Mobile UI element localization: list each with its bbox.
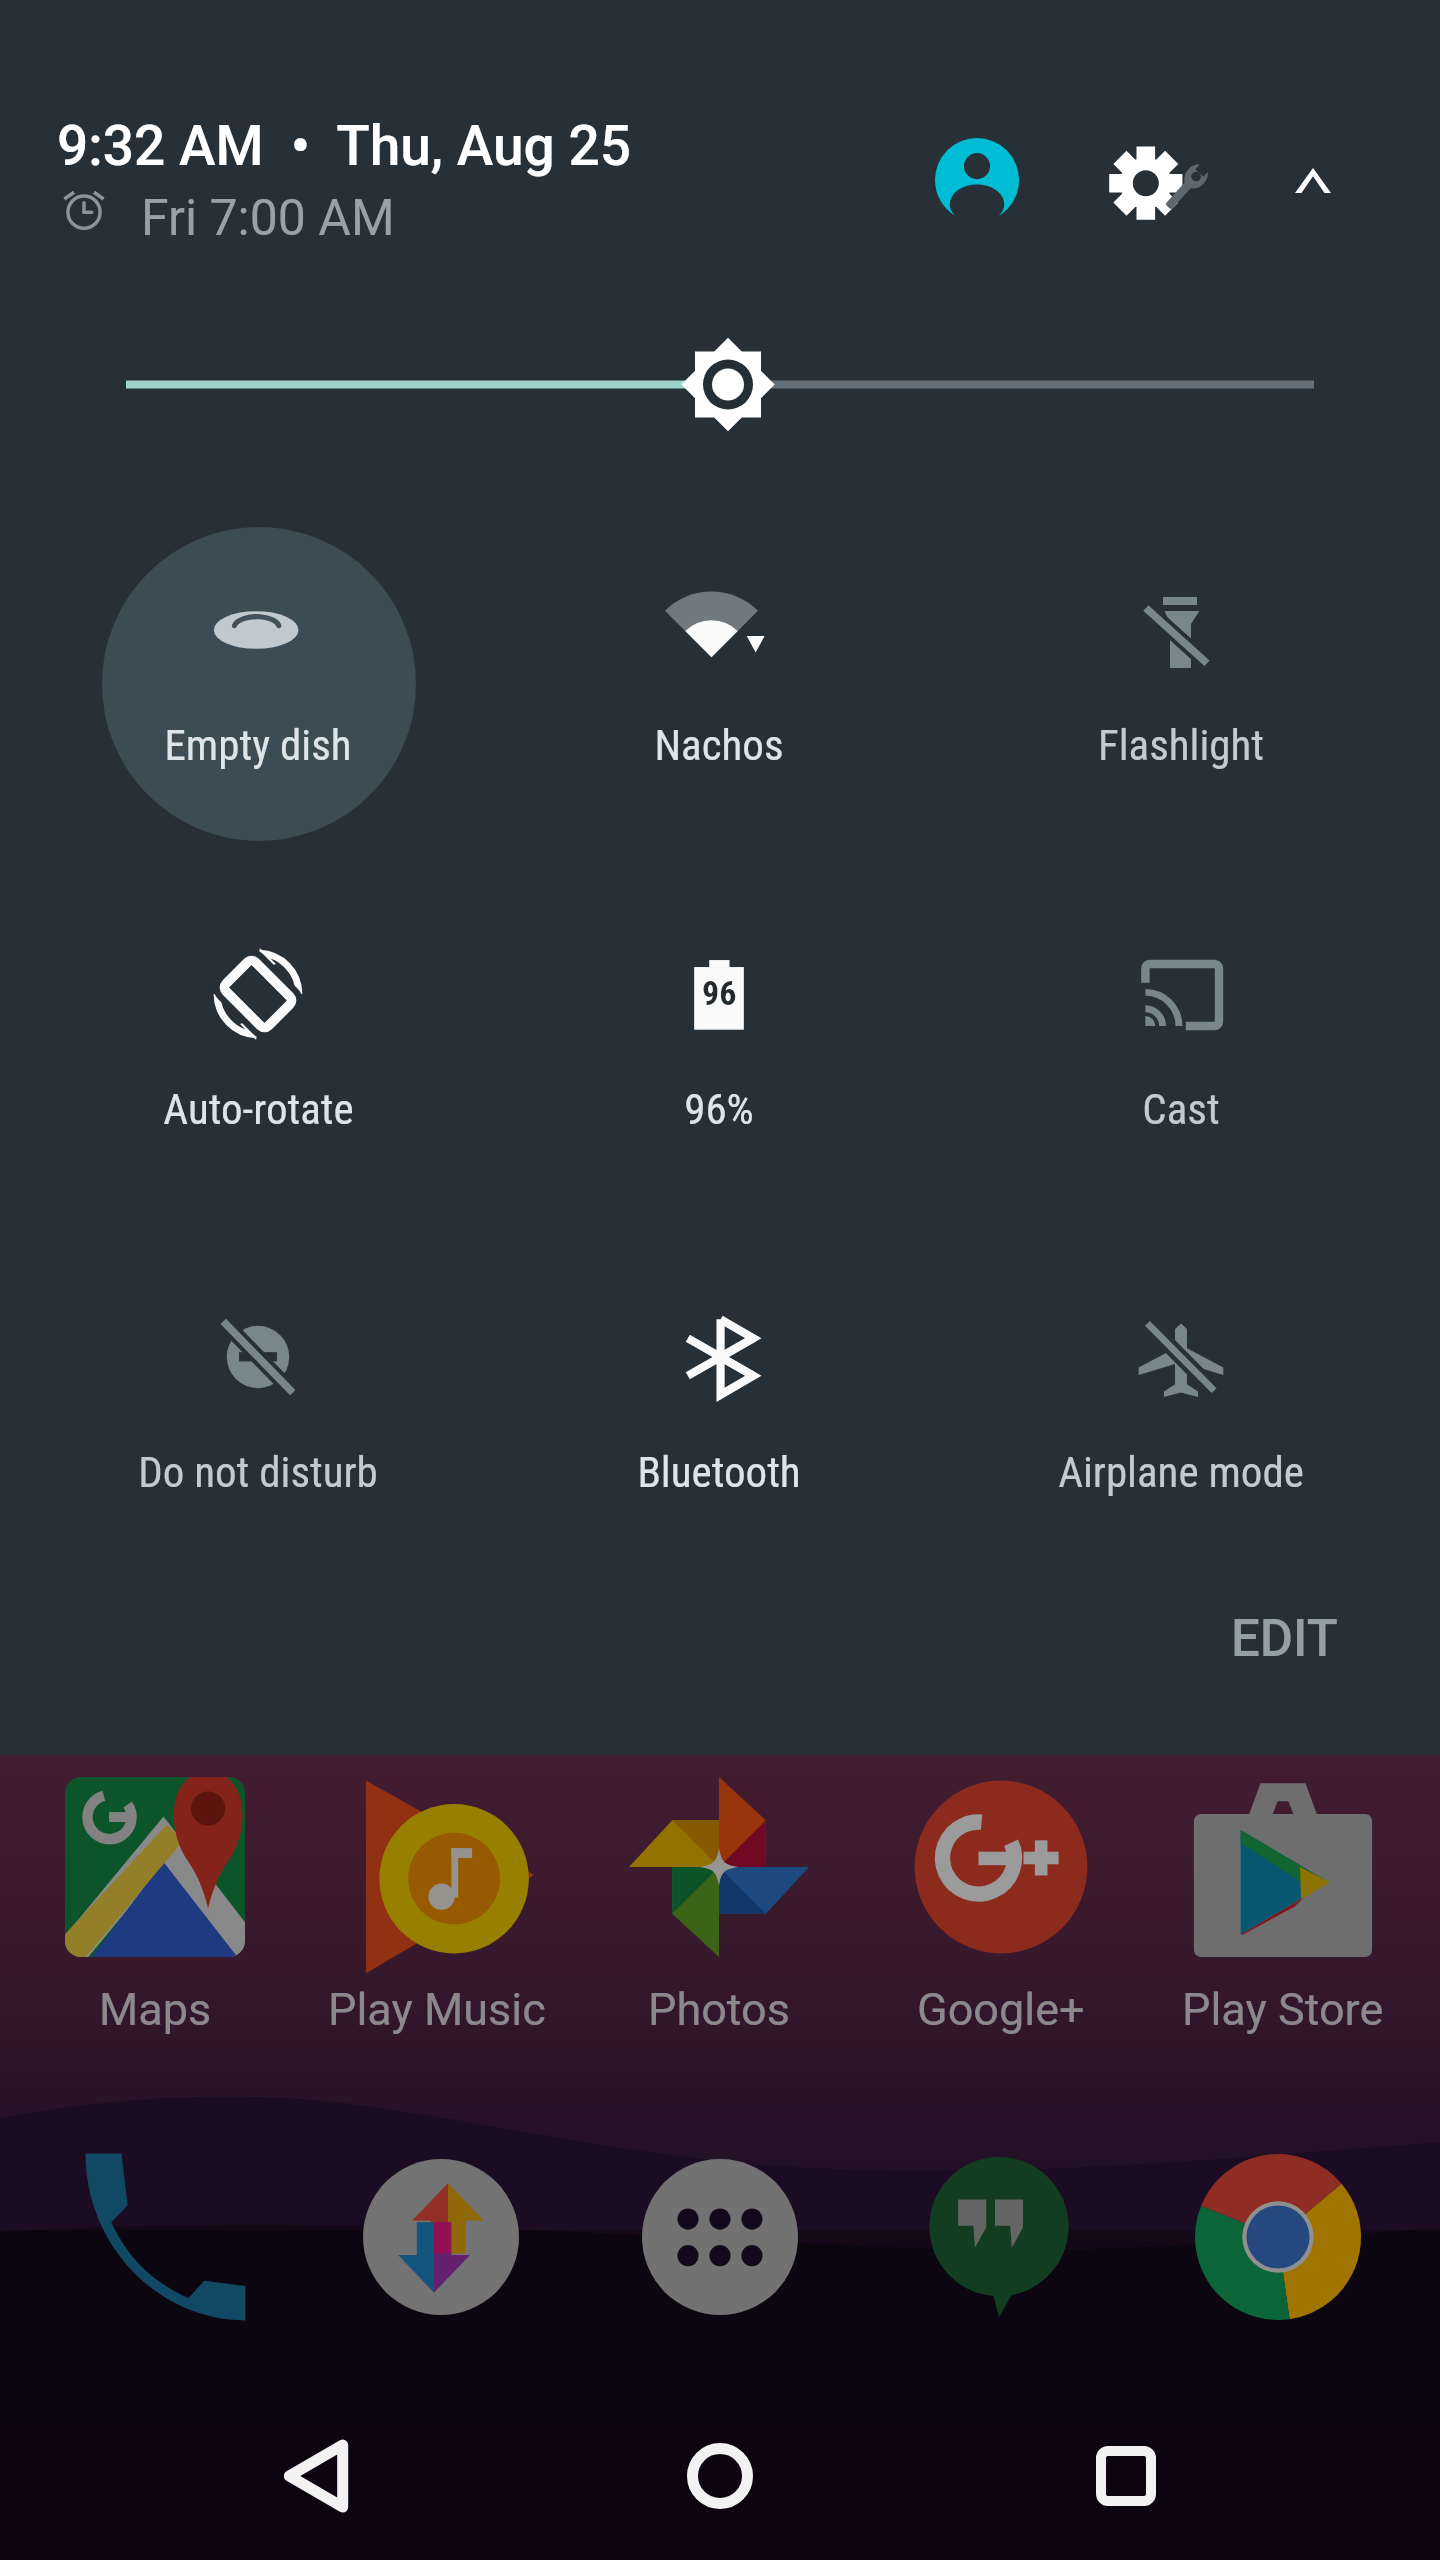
staticText: Nachos bbox=[654, 720, 784, 770]
staticText: Bluetooth bbox=[637, 1447, 801, 1497]
staticText: Photos bbox=[648, 1983, 791, 2036]
staticText: Airplane mode bbox=[1058, 1447, 1304, 1497]
button[interactable]: Hangouts bbox=[889, 2137, 1109, 2337]
button[interactable]: Empty dish bbox=[28, 505, 488, 835]
button[interactable]: Flashlight bbox=[951, 505, 1411, 835]
staticText: Auto-rotate bbox=[163, 1084, 354, 1134]
button[interactable]: Back bbox=[241, 2401, 391, 2551]
button[interactable]: EDIT bbox=[1189, 1584, 1379, 1694]
staticText: Do not disturb bbox=[138, 1447, 378, 1497]
staticText: Play Music bbox=[328, 1983, 546, 2036]
staticText: Flashlight bbox=[1098, 720, 1264, 770]
button[interactable]: Snapseed bbox=[331, 2137, 551, 2337]
button[interactable]: Brightness bbox=[0, 330, 1440, 440]
button[interactable]: Bluetooth bbox=[489, 1232, 949, 1562]
button[interactable]: Phone bbox=[52, 2137, 272, 2337]
staticText: Cast bbox=[1142, 1084, 1220, 1134]
button[interactable]: Collapse panel bbox=[1243, 110, 1383, 250]
staticText: Empty dish bbox=[164, 720, 352, 770]
button[interactable]: Settings bbox=[1092, 121, 1232, 261]
button[interactable]: Google+ bbox=[857, 1762, 1145, 2062]
staticText: Google+ bbox=[917, 1983, 1085, 2036]
button[interactable]: Maps bbox=[11, 1762, 299, 2062]
button[interactable]: Recent apps bbox=[1051, 2401, 1201, 2551]
button[interactable]: Do not disturb bbox=[28, 1232, 488, 1562]
staticText: 96% bbox=[684, 1084, 754, 1134]
staticText: 9:32 AM • Thu, Aug 25 bbox=[57, 114, 631, 178]
button[interactable]: Cast bbox=[951, 869, 1411, 1199]
button[interactable]: All apps bbox=[610, 2137, 830, 2337]
button[interactable]: Home bbox=[645, 2401, 795, 2551]
staticText: Fri 7:00 AM bbox=[141, 189, 395, 248]
button[interactable]: Play Store bbox=[1139, 1762, 1427, 2062]
button[interactable]: 96 bbox=[489, 869, 949, 1199]
button[interactable]: Nachos bbox=[489, 505, 949, 835]
button[interactable]: Play Music bbox=[293, 1762, 581, 2062]
staticText: Maps bbox=[99, 1983, 212, 2036]
button[interactable]: Auto-rotate bbox=[28, 869, 488, 1199]
staticText: 96 bbox=[702, 973, 737, 1013]
staticText: Play Store bbox=[1182, 1983, 1384, 2036]
button[interactable]: Photos bbox=[575, 1762, 863, 2062]
button[interactable]: User account bbox=[907, 110, 1047, 250]
staticText: EDIT bbox=[1231, 1609, 1338, 1669]
button[interactable]: Airplane mode bbox=[951, 1232, 1411, 1562]
button[interactable]: Chrome bbox=[1168, 2137, 1388, 2337]
